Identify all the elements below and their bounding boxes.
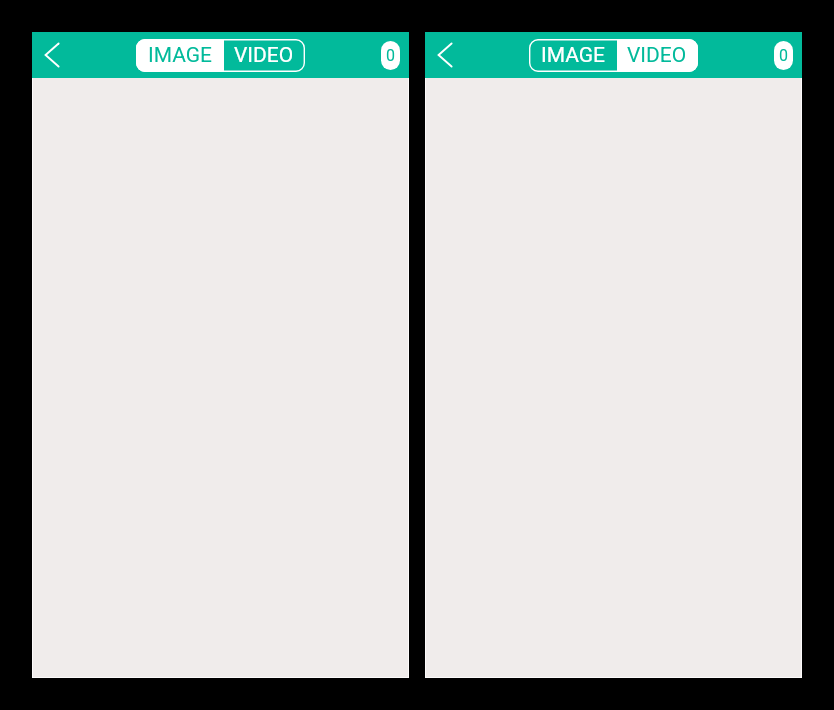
staticText: VIDEO	[234, 43, 294, 68]
staticText: 0	[386, 46, 395, 65]
button[interactable]: Selected items count	[381, 41, 400, 70]
button[interactable]: Selected items count	[774, 41, 793, 70]
button[interactable]: VIDEO	[617, 39, 698, 72]
button[interactable]: Back	[35, 37, 71, 73]
button[interactable]: Back	[428, 37, 464, 73]
button[interactable]: IMAGE	[529, 39, 617, 72]
staticText: 0	[779, 46, 788, 65]
staticText: VIDEO	[627, 43, 687, 68]
staticText: IMAGE	[148, 43, 213, 68]
button[interactable]: VIDEO	[224, 39, 305, 72]
staticText: IMAGE	[541, 43, 606, 68]
button[interactable]: IMAGE	[136, 39, 224, 72]
